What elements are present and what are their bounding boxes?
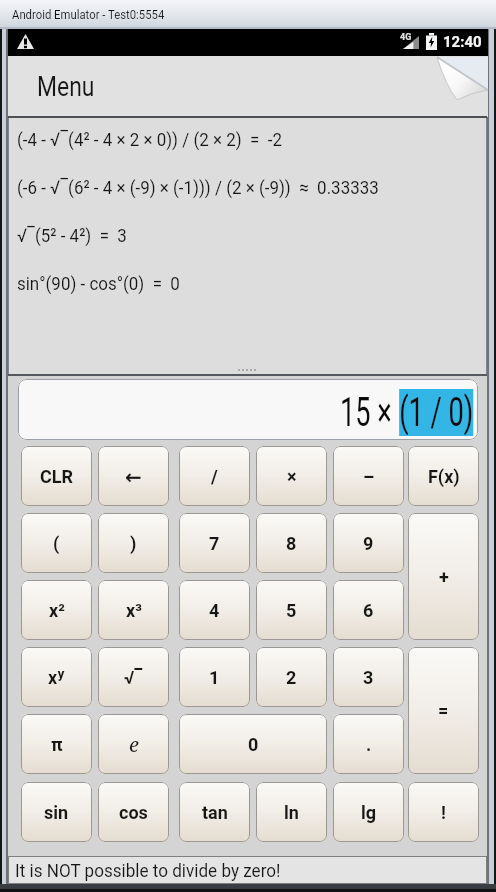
button[interactable]: ln [256,782,327,842]
staticText: 5 [286,600,297,621]
button[interactable]: √‾ [98,647,169,707]
button[interactable]: x³ [98,580,169,640]
button[interactable]: ) [98,513,169,573]
staticText: × [287,466,297,487]
button[interactable]: 7 [179,513,250,573]
staticText: 9 [363,533,374,554]
staticText: – [363,466,375,487]
staticText: 7 [209,533,220,554]
button[interactable]: 6 [333,580,404,640]
staticText: ln [284,802,299,823]
button[interactable]: lg [333,782,404,842]
button[interactable]: π [21,714,92,774]
staticText: sin [44,802,69,823]
staticText: ← [125,465,142,488]
staticText: 6 [363,600,374,621]
staticText: xʸ [48,667,65,688]
button[interactable]: sin [21,782,92,842]
button[interactable]: = [408,647,479,774]
staticText: (-6 - √‾(6² - 4 × (-9) × (-1))) / (2 × (… [17,176,379,198]
staticText: x² [49,600,65,621]
button[interactable]: 3 [333,647,404,707]
button[interactable]: 1 [179,647,250,707]
staticText: Menu [37,71,95,103]
button[interactable] [8,56,488,117]
button[interactable]: / [179,446,250,506]
staticText: 0 [248,734,259,755]
button[interactable]: + [408,513,479,640]
button[interactable]: 9 [333,513,404,573]
staticText: CLR [40,466,74,487]
staticText: It is NOT possible to divide by zero! [15,859,280,881]
button[interactable]: ( [21,513,92,573]
button[interactable]: 4 [179,580,250,640]
staticText: √‾ [124,667,143,688]
button[interactable]: ! [408,782,479,842]
button[interactable]: ← [98,446,169,506]
staticText: lg [361,802,377,823]
button[interactable]: 8 [256,513,327,573]
staticText: 3 [363,667,374,688]
staticText: ( [53,533,60,554]
staticText: 12:40 [443,33,482,51]
button[interactable]: x² [21,580,92,640]
staticText: tan [202,802,228,823]
staticText: cos [119,802,148,823]
staticText: . [366,734,372,755]
staticText: x³ [126,600,142,621]
button[interactable]: × [256,446,327,506]
staticText: (1 / 0) [399,389,473,436]
button[interactable]: . [333,714,404,774]
staticText: ) [130,533,137,554]
button[interactable]: e [98,714,169,774]
staticText: F(x) [428,466,460,487]
staticText: 4G [400,32,412,43]
staticText: 8 [286,533,297,554]
staticText: = [438,700,449,721]
button[interactable]: xʸ [21,647,92,707]
staticText: π [51,734,63,755]
staticText: 15 × [340,389,399,436]
button[interactable]: 5 [256,580,327,640]
staticText: / [211,466,218,487]
staticText: + [439,566,449,587]
button[interactable] [18,379,478,440]
button[interactable]: CLR [21,446,92,506]
button[interactable]: 0 [179,714,327,774]
staticText: (-4 - √‾(4² - 4 × 2 × 0)) / (2 × 2) = -2 [17,128,283,150]
staticText: Android Emulator - Test0:5554 [12,7,164,22]
button[interactable]: – [333,446,404,506]
staticText: e [129,731,139,758]
staticText: ! [441,802,446,823]
button[interactable]: F(x) [408,446,479,506]
button[interactable]: cos [98,782,169,842]
button[interactable]: tan [179,782,250,842]
staticText: sin°(90) - cos°(0) = 0 [17,272,180,294]
staticText: 4 [209,600,220,621]
staticText: 1 [209,667,220,688]
button[interactable]: 2 [256,647,327,707]
staticText: √‾(5² - 4²) = 3 [17,224,128,246]
staticText: 2 [286,667,297,688]
